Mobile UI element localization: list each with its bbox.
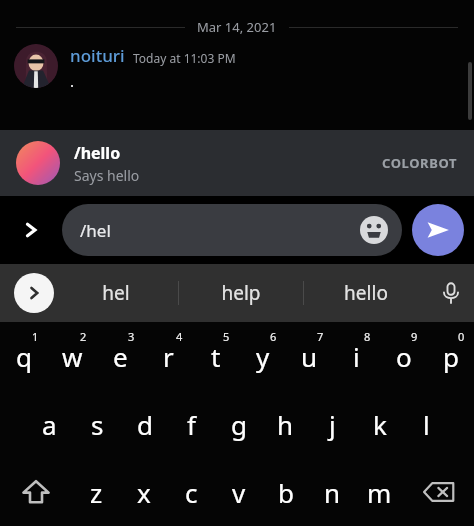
staticText: 0 [458, 329, 465, 344]
staticText: h [277, 407, 294, 442]
staticText: l [423, 407, 430, 442]
button[interactable]: y [239, 322, 286, 390]
button[interactable]: u [286, 322, 333, 390]
staticText: Says hello [74, 166, 140, 185]
staticText: m [367, 475, 392, 510]
staticText: e [113, 339, 128, 374]
staticText: o [396, 339, 412, 374]
button[interactable]: j [309, 390, 356, 458]
button[interactable]: i [333, 322, 380, 390]
button[interactable]: r [144, 322, 192, 390]
staticText: /hello [74, 142, 121, 164]
staticText: i [353, 339, 360, 374]
staticText: q [16, 339, 32, 374]
staticText: 4 [176, 329, 183, 344]
staticText: 6 [270, 329, 277, 344]
staticText: 7 [317, 329, 324, 344]
staticText: p [443, 339, 459, 374]
button[interactable]: Voice input [428, 264, 474, 322]
button[interactable]: w [48, 322, 96, 390]
staticText: 1 [32, 329, 39, 344]
button[interactable]: Shift [0, 458, 72, 526]
staticText: n [324, 475, 341, 510]
staticText: 9 [411, 329, 418, 344]
staticText: 2 [80, 329, 87, 344]
staticText: help [221, 280, 261, 306]
staticText: k [373, 407, 387, 442]
button[interactable]: help [179, 264, 303, 322]
button[interactable]: /hello [0, 130, 474, 196]
button[interactable]: h [262, 390, 309, 458]
button[interactable]: s [73, 390, 121, 458]
button[interactable]: q [0, 322, 48, 390]
button[interactable]: c [168, 458, 215, 526]
staticText: s [91, 407, 104, 442]
staticText: x [137, 475, 151, 510]
button[interactable]: t [192, 322, 239, 390]
button[interactable]: k [356, 390, 403, 458]
button[interactable]: Send [412, 204, 464, 256]
button[interactable]: /hel [62, 204, 402, 256]
button[interactable]: n [309, 458, 356, 526]
button[interactable]: Show commands [0, 196, 62, 264]
staticText: w [62, 339, 83, 374]
staticText: Today at 11:03 PM [133, 50, 236, 66]
button[interactable]: b [262, 458, 309, 526]
staticText: f [187, 407, 196, 442]
staticText: b [278, 475, 294, 510]
button[interactable]: d [121, 390, 168, 458]
button[interactable]: e [96, 322, 144, 390]
button[interactable]: o [380, 322, 427, 390]
staticText: y [256, 339, 270, 374]
button[interactable]: Backspace [403, 458, 474, 526]
staticText: 8 [364, 329, 371, 344]
button[interactable]: f [168, 390, 215, 458]
button[interactable]: More suggestions [14, 273, 54, 313]
staticText: v [232, 475, 246, 510]
staticText: j [329, 407, 336, 442]
staticText: hello [344, 280, 388, 306]
staticText: COLORBOT [382, 154, 458, 172]
staticText: 5 [223, 329, 230, 344]
button[interactable]: m [356, 458, 403, 526]
button[interactable]: Emoji [360, 216, 388, 244]
staticText: a [42, 407, 57, 442]
staticText: 3 [128, 329, 135, 344]
button[interactable]: p [427, 322, 474, 390]
staticText: r [163, 339, 174, 374]
button[interactable]: hel [54, 264, 178, 322]
button[interactable]: x [120, 458, 168, 526]
button[interactable]: l [403, 390, 450, 458]
staticText: t [211, 339, 221, 374]
staticText: d [137, 407, 153, 442]
button[interactable]: g [215, 390, 262, 458]
button[interactable]: a [25, 390, 73, 458]
staticText: Mar 14, 2021 [197, 18, 277, 36]
button[interactable]: z [72, 458, 120, 526]
staticText: u [301, 339, 318, 374]
button[interactable]: v [215, 458, 262, 526]
staticText: g [231, 407, 247, 442]
staticText: c [185, 475, 198, 510]
staticText: hel [102, 280, 130, 306]
staticText: /hel [80, 219, 111, 242]
button[interactable]: hello [304, 264, 428, 322]
staticText: noituri [70, 44, 125, 67]
staticText: . [70, 71, 75, 91]
staticText: z [90, 475, 103, 510]
